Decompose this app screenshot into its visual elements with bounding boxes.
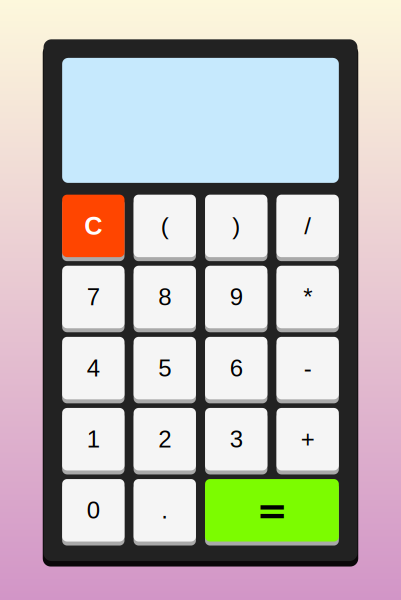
- staticText: *: [303, 284, 312, 310]
- button[interactable]: +: [276, 408, 339, 474]
- button[interactable]: ): [205, 195, 267, 261]
- button[interactable]: 3: [205, 408, 267, 474]
- button[interactable]: 6: [205, 337, 267, 403]
- button[interactable]: C: [62, 195, 125, 261]
- staticText: 3: [230, 426, 243, 453]
- button[interactable]: *: [276, 266, 339, 332]
- staticText: C: [84, 212, 102, 240]
- button[interactable]: (: [134, 195, 196, 261]
- button[interactable]: .: [134, 479, 196, 545]
- staticText: /: [304, 212, 311, 239]
- staticText: -: [304, 355, 312, 381]
- button[interactable]: /: [276, 195, 339, 261]
- button[interactable]: 2: [134, 408, 196, 474]
- staticText: 1: [87, 426, 100, 453]
- staticText: 6: [230, 355, 243, 381]
- button[interactable]: -: [276, 337, 339, 403]
- button[interactable]: 4: [62, 337, 125, 403]
- staticText: 9: [230, 284, 243, 310]
- button[interactable]: 0: [62, 479, 125, 545]
- staticText: =: [256, 489, 287, 532]
- staticText: 0: [87, 497, 100, 524]
- staticText: 2: [158, 426, 171, 453]
- staticText: +: [301, 426, 315, 453]
- button[interactable]: =: [205, 479, 339, 545]
- staticText: (: [161, 212, 169, 239]
- staticText: 4: [87, 355, 100, 381]
- button[interactable]: 7: [62, 266, 125, 332]
- button[interactable]: 1: [62, 408, 125, 474]
- staticText: 7: [87, 284, 100, 310]
- button[interactable]: 9: [205, 266, 267, 332]
- staticText: 8: [158, 284, 171, 310]
- button[interactable]: 5: [134, 337, 196, 403]
- staticText: .: [161, 497, 168, 524]
- button[interactable]: 8: [134, 266, 196, 332]
- staticText: 5: [158, 355, 171, 381]
- staticText: ): [232, 212, 240, 239]
